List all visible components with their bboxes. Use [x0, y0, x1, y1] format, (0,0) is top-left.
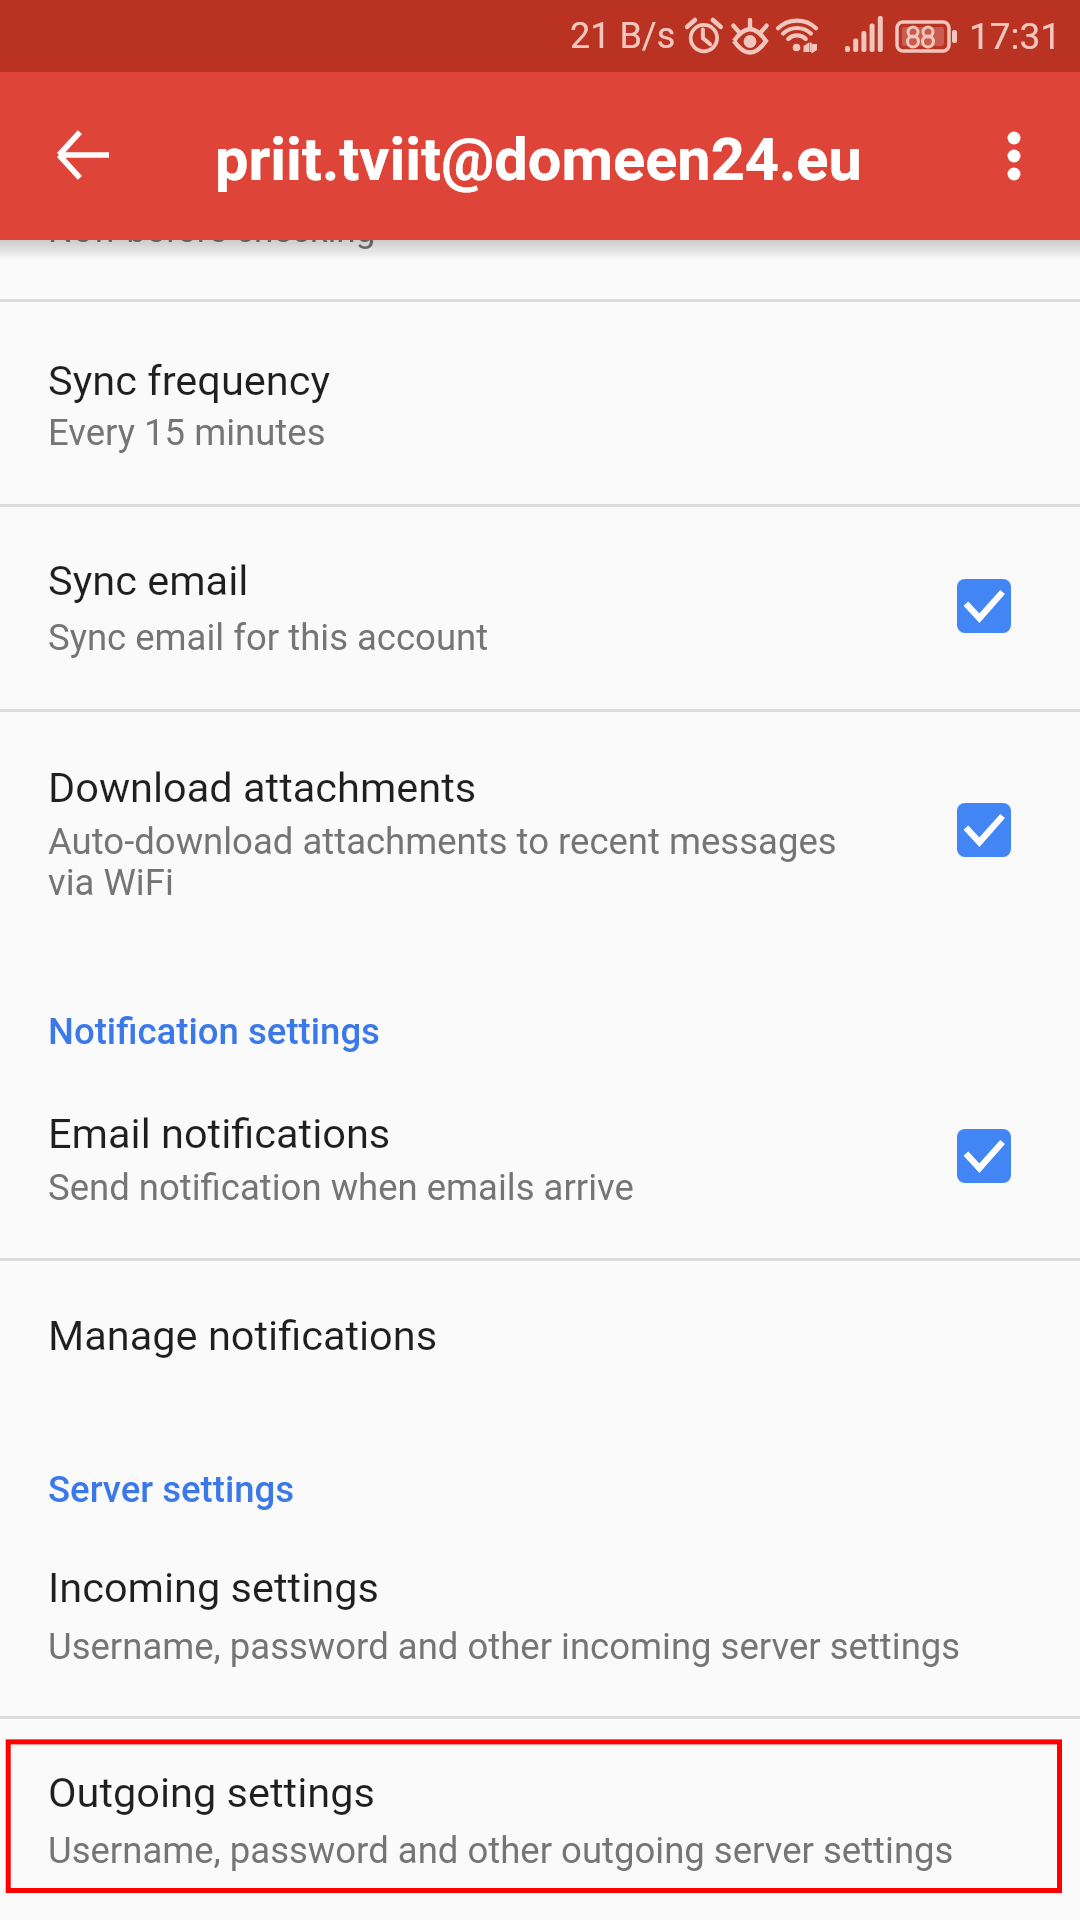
button[interactable]: Sync email: [0, 507, 1080, 709]
staticText: priit.tviit@domeen24.eu: [215, 125, 862, 195]
staticText: Outgoing settings: [48, 1768, 375, 1817]
staticText: 21 B/s: [570, 15, 676, 57]
staticText: New before checking: [48, 210, 376, 251]
staticText: Username, password and other incoming se…: [48, 1625, 961, 1668]
staticText: Send notification when emails arrive: [48, 1166, 634, 1209]
staticText: Incoming settings: [48, 1563, 379, 1612]
staticText: 17:31: [969, 15, 1062, 58]
other: Enabled: [957, 803, 1011, 857]
button[interactable]: Download attachments: [0, 712, 1080, 957]
staticText: Download attachments: [48, 763, 477, 812]
staticText: Sync email: [48, 556, 249, 605]
other: Enabled: [957, 579, 1011, 633]
staticText: Username, password and other outgoing se…: [48, 1829, 954, 1872]
button[interactable]: More options: [948, 72, 1080, 240]
staticText: Manage notifications: [48, 1311, 438, 1360]
staticText: Server settings: [48, 1468, 295, 1511]
staticText: via WiFi: [48, 861, 174, 904]
staticText: Every 15 minutes: [48, 411, 326, 454]
button[interactable]: Email notifications: [0, 1060, 1080, 1258]
button[interactable]: Outgoing settings: [0, 1719, 1080, 1920]
button[interactable]: Navigate up: [0, 72, 168, 240]
staticText: Sync email for this account: [48, 616, 489, 659]
button[interactable]: Manage notifications: [0, 1261, 1080, 1410]
button[interactable]: Sync frequency: [0, 302, 1080, 504]
staticText: Email notifications: [48, 1109, 391, 1158]
staticText: Notification settings: [48, 1010, 380, 1053]
button[interactable]: Incoming settings: [0, 1516, 1080, 1716]
other: Enabled: [957, 1129, 1011, 1183]
staticText: Auto-download attachments to recent mess…: [48, 820, 837, 863]
staticText: Sync frequency: [48, 356, 331, 405]
